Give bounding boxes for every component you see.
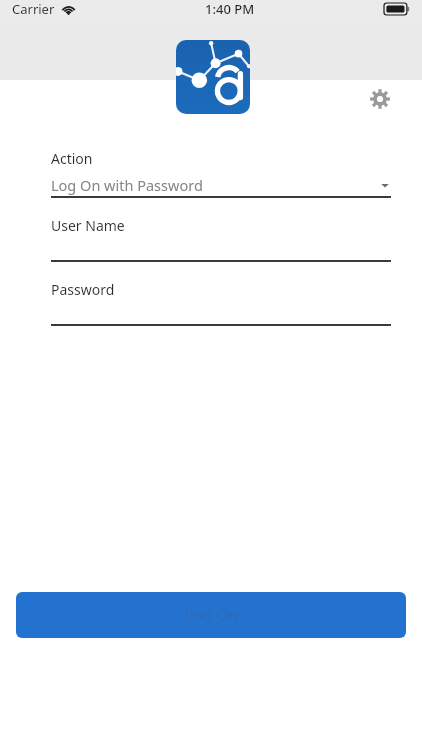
staticText: Log On — [184, 604, 239, 626]
button[interactable]: Settings — [362, 81, 398, 117]
button[interactable]: Log On — [16, 592, 406, 638]
staticText: Password — [51, 280, 115, 299]
staticText: Carrier — [12, 0, 55, 18]
staticText: User Name — [51, 216, 125, 235]
button[interactable]: Log On with Password — [51, 172, 391, 198]
staticText: 1:40 PM — [205, 0, 255, 18]
staticText: Log On with Password — [51, 175, 203, 195]
staticText: Action — [51, 149, 93, 168]
